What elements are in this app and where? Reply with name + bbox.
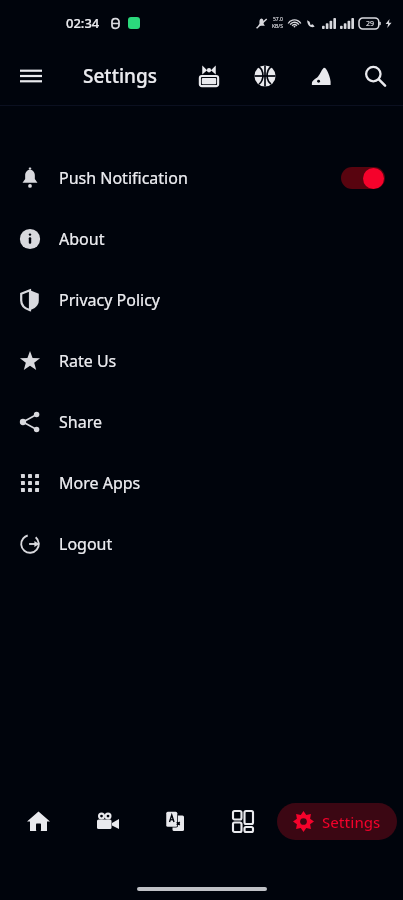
staticText: Settings [83, 63, 157, 89]
button[interactable]: Menu [12, 57, 50, 95]
button[interactable]: Translate [141, 796, 209, 846]
button[interactable]: Push Notification [0, 147, 403, 208]
button[interactable]: Sports [301, 56, 341, 96]
button[interactable]: More Apps [0, 452, 403, 513]
staticText: Settings [322, 812, 381, 832]
button[interactable]: Live TV [189, 56, 229, 96]
button[interactable]: Rate Us [0, 330, 403, 391]
staticText: About [59, 228, 105, 250]
button[interactable]: Logout [0, 513, 403, 574]
staticText: Privacy Policy [59, 289, 160, 311]
staticText: Push Notification [59, 167, 188, 189]
staticText: 29 [366, 19, 375, 29]
staticText: 02:34 [66, 14, 100, 32]
button[interactable]: Settings [277, 803, 397, 840]
staticText: Logout [59, 533, 113, 555]
button[interactable]: Share [0, 391, 403, 452]
staticText: 57.0 [273, 16, 283, 23]
button[interactable]: Basketball [245, 56, 285, 96]
staticText: Share [59, 411, 102, 433]
staticText: KB/S [272, 23, 283, 30]
button[interactable]: Dashboard [209, 796, 277, 846]
button[interactable]: Privacy Policy [0, 269, 403, 330]
button[interactable]: About [0, 208, 403, 269]
button[interactable]: Home [4, 796, 73, 846]
button[interactable]: Search [355, 56, 395, 96]
staticText: Rate Us [59, 350, 117, 372]
button[interactable]: Videos [73, 796, 141, 846]
staticText: More Apps [59, 472, 141, 494]
button[interactable]: Push Notification toggle [341, 167, 385, 189]
